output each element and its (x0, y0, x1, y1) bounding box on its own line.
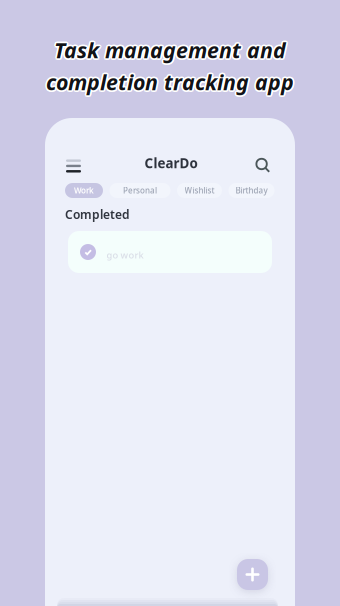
staticText: Personal (123, 185, 157, 196)
button[interactable]: Add task (237, 559, 268, 590)
button[interactable]: Wishlist (177, 183, 222, 198)
staticText: completion tracking app (46, 66, 294, 94)
staticText: Work (74, 185, 94, 196)
staticText: completion tracking app (46, 68, 294, 96)
button[interactable]: Birthday (228, 183, 274, 198)
staticText: Task management and (55, 37, 287, 65)
staticText: completion tracking app (46, 69, 294, 98)
staticText: Task management and (54, 36, 286, 64)
button[interactable]: Search (250, 153, 276, 179)
staticText: Completed (65, 206, 130, 222)
staticText: completion tracking app (47, 69, 295, 97)
staticText: Task management and (55, 35, 287, 63)
staticText: completion tracking app (45, 67, 293, 95)
staticText: completion tracking app (44, 68, 292, 96)
staticText: go work (106, 249, 143, 261)
staticText: ClearDo (144, 154, 197, 172)
staticText: Task management and (52, 36, 284, 64)
button[interactable]: Menu (60, 153, 86, 179)
button[interactable]: Work (65, 183, 103, 198)
button[interactable]: Personal (109, 183, 170, 198)
staticText: completion tracking app (48, 68, 296, 96)
button[interactable]: go work (68, 231, 272, 273)
staticText: Task management and (56, 36, 288, 64)
staticText: completion tracking app (47, 67, 295, 95)
staticText: Task management and (53, 35, 285, 63)
staticText: completion tracking app (45, 69, 293, 97)
staticText: Task management and (53, 37, 285, 65)
staticText: Wishlist (184, 185, 214, 196)
staticText: Birthday (235, 185, 267, 196)
staticText: Task management and (54, 34, 286, 62)
staticText: Task management and (54, 37, 286, 66)
